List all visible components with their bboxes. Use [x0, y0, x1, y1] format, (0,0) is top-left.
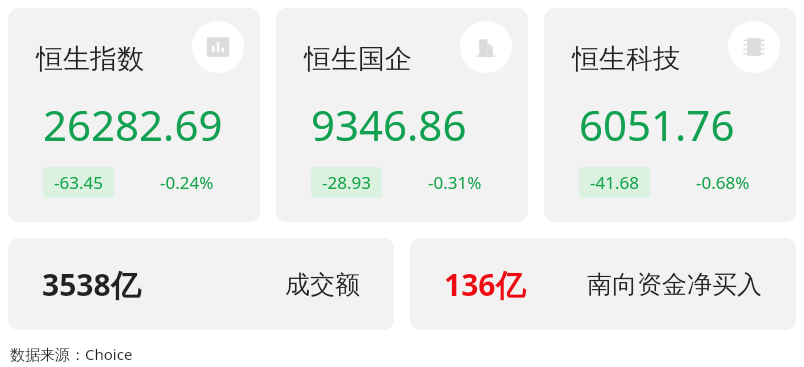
staticText: -63.45: [54, 171, 103, 194]
staticText: 恒生指数: [36, 42, 144, 76]
staticText: 9346.86: [311, 96, 467, 153]
staticText: 6051.76: [579, 96, 735, 153]
button[interactable]: 恒生指数 chart: [8, 8, 260, 222]
staticText: -41.68: [590, 171, 639, 194]
staticText: -0.68%: [696, 171, 750, 194]
staticText: 26282.69: [43, 96, 223, 153]
button[interactable]: 恒生国企 industry: [276, 8, 528, 222]
button[interactable]: 恒生科技 tech: [544, 8, 796, 222]
staticText: 南向资金净买入: [587, 269, 762, 300]
button[interactable]: 恒生国企 industry: [460, 21, 512, 73]
staticText: -0.31%: [428, 171, 482, 194]
staticText: 数据来源：Choice: [10, 344, 133, 364]
staticText: 136亿: [444, 264, 526, 305]
staticText: 恒生科技: [572, 42, 680, 76]
button[interactable]: 136亿: [410, 238, 796, 330]
staticText: 恒生国企: [304, 42, 412, 76]
staticText: 成交额: [285, 269, 360, 300]
staticText: 3538亿: [42, 264, 141, 305]
button[interactable]: 恒生指数 chart: [192, 21, 244, 73]
staticText: -0.24%: [160, 171, 214, 194]
staticText: -28.93: [322, 171, 371, 194]
button[interactable]: 恒生科技 tech: [728, 21, 780, 73]
button[interactable]: 3538亿: [8, 238, 394, 330]
